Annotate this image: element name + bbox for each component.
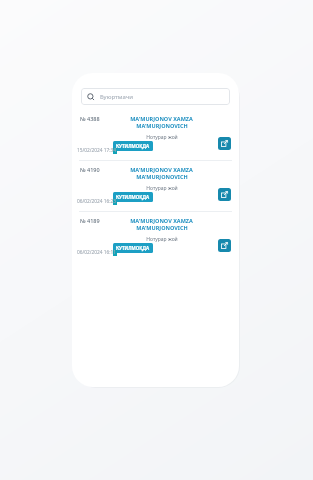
staticText: КУТИЛМОҚДА [116,245,150,251]
staticText: КУТИЛМОҚДА [116,143,150,149]
staticText: MA'MURJONOVICH [136,173,188,180]
staticText: № 4190 [80,166,100,173]
staticText: 06/02/2024 16:11 [77,249,117,256]
staticText: 15/02/2024 17:34 [77,147,117,154]
staticText: MA'MURJONOV XAMZA [130,115,193,122]
button[interactable]: MA'MURJONOV XAMZA [72,212,239,262]
staticText: 06/02/2024 16:23 [77,198,117,205]
staticText: MA'MURJONOV XAMZA [130,217,193,224]
staticText: MA'MURJONOV XAMZA [130,166,193,173]
staticText: № 4388 [80,115,100,122]
button[interactable]: Edit order [218,188,231,201]
button[interactable]: MA'MURJONOV XAMZA [72,161,239,211]
staticText: № 4189 [80,217,100,224]
staticText: КУТИЛМОҚДА [116,194,150,200]
staticText: Нотурар жой [146,236,178,243]
button[interactable]: MA'MURJONOV XAMZA [72,110,239,160]
button[interactable]: Буюртмачи [81,88,230,105]
staticText: MA'MURJONOVICH [136,122,188,129]
button[interactable]: Edit order [218,137,231,150]
button[interactable]: Edit order [218,239,231,252]
staticText: Буюртмачи [100,93,134,101]
staticText: Нотурар жой [146,185,178,192]
staticText: MA'MURJONOVICH [136,224,188,231]
staticText: Нотурар жой [146,134,178,141]
